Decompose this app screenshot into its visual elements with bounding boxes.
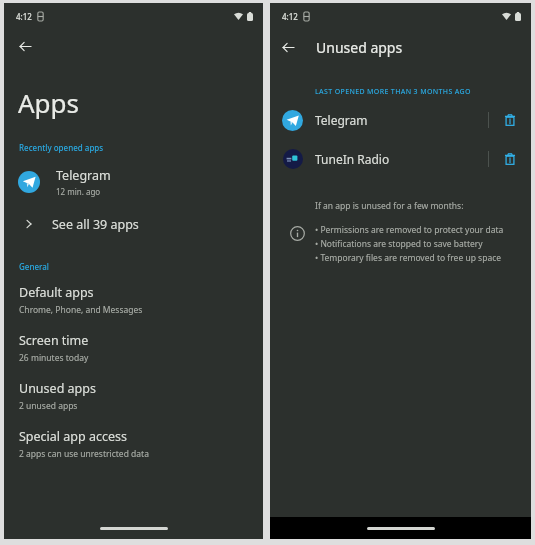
button[interactable]: Delete TuneIn Radio [489, 146, 531, 172]
staticText: Special app access [19, 428, 127, 445]
button[interactable]: Unused apps [4, 380, 263, 412]
staticText: Screen time [19, 332, 89, 349]
staticText: 4:12 [16, 11, 32, 22]
button[interactable]: Telegram [4, 163, 263, 201]
staticText: 12 min. ago [56, 186, 101, 197]
button[interactable]: Screen time [4, 332, 263, 364]
staticText: Default apps [19, 284, 94, 301]
button[interactable]: Back [4, 29, 263, 63]
button[interactable]: Back [270, 29, 306, 65]
staticText: Telegram [56, 167, 111, 184]
staticText: LAST OPENED MORE THAN 3 MONTHS AGO [315, 87, 471, 97]
staticText: • Temporary files are removed to free up… [315, 252, 502, 264]
staticText: Unused apps [19, 380, 96, 397]
button[interactable]: Default apps [4, 284, 263, 316]
staticText: 2 unused apps [19, 400, 78, 412]
button[interactable]: Telegram [270, 107, 531, 133]
staticText: Apps [18, 85, 80, 120]
staticText: 2 apps can use unrestricted data [19, 448, 149, 460]
staticText: TuneIn Radio [315, 151, 390, 167]
button[interactable]: TuneIn Radio [270, 146, 531, 172]
button[interactable]: Delete Telegram [489, 107, 531, 133]
staticText: If an app is unused for a few months: [315, 200, 464, 212]
staticText: Recently opened apps [19, 142, 104, 153]
button[interactable]: Special app access [4, 428, 263, 460]
staticText: • Notifications are stopped to save batt… [315, 238, 483, 250]
staticText: 4:12 [282, 11, 298, 22]
staticText: Telegram [315, 112, 368, 128]
staticText: See all 39 apps [52, 216, 139, 233]
staticText: • Permissions are removed to protect you… [315, 224, 504, 236]
staticText: 26 minutes today [19, 352, 89, 364]
staticText: General [19, 261, 49, 272]
button[interactable]: See all 39 apps [4, 209, 263, 239]
staticText: Chrome, Phone, and Messages [19, 304, 143, 316]
staticText: Unused apps [316, 38, 403, 57]
